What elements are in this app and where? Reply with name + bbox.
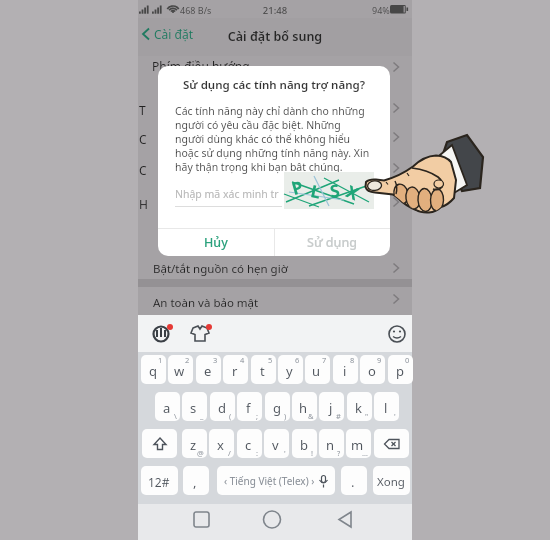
- button[interactable]: w: [168, 355, 193, 384]
- staticText: S: [328, 178, 342, 203]
- button[interactable]: s: [182, 392, 207, 421]
- button[interactable]: f: [237, 392, 262, 421]
- button[interactable]: k: [347, 392, 372, 421]
- button[interactable]: .: [341, 466, 367, 495]
- staticText: 0: [405, 355, 410, 365]
- staticText: \: [174, 411, 177, 421]
- staticText: ‹ Tiếng Việt (Telex) ›: [224, 474, 315, 488]
- button[interactable]: [148, 321, 174, 347]
- staticText: .: [351, 473, 355, 491]
- staticText: ": [365, 411, 369, 421]
- button[interactable]: [142, 429, 177, 458]
- button[interactable]: P: [284, 172, 374, 209]
- staticText: Các tính năng này chỉ dành cho những: [175, 104, 365, 118]
- button[interactable]: Cài đặt: [141, 26, 194, 42]
- staticText: z: [190, 436, 197, 454]
- button[interactable]: g: [265, 392, 290, 421]
- staticText: a: [163, 399, 171, 417]
- button[interactable]: Hủy: [158, 229, 274, 256]
- button[interactable]: Sử dụng: [275, 229, 390, 256]
- staticText: p: [396, 362, 404, 380]
- staticText: T: [139, 102, 146, 118]
- button[interactable]: e: [196, 355, 221, 384]
- button[interactable]: m: [346, 429, 371, 458]
- button[interactable]: Bật/tắt nguồn có hẹn giờ: [138, 256, 412, 280]
- staticText: n: [326, 436, 335, 454]
- staticText: …: [362, 448, 368, 458]
- staticText: w: [174, 362, 185, 380]
- staticText: người dùng khác có thể không hiểu: [175, 132, 351, 146]
- staticText: y: [286, 362, 293, 380]
- button[interactable]: p: [388, 355, 413, 384]
- button[interactable]: i: [333, 355, 358, 384]
- staticText: người có yêu cầu đặc biệt. Những: [175, 118, 341, 132]
- button[interactable]: v: [264, 429, 289, 458]
- button[interactable]: [374, 429, 409, 458]
- staticText: ': [284, 448, 286, 458]
- button[interactable]: j: [319, 392, 344, 421]
- staticText: r: [232, 362, 238, 380]
- staticText: Xong: [377, 474, 405, 490]
- staticText: Bật/tắt nguồn có hẹn giờ: [153, 261, 288, 277]
- button[interactable]: l: [374, 392, 399, 421]
- button[interactable]: ‹ Tiếng Việt (Telex) ›: [217, 466, 335, 495]
- staticText: 6: [295, 355, 300, 365]
- staticText: l: [384, 399, 388, 417]
- staticText: b: [300, 436, 308, 454]
- staticText: 4: [240, 355, 245, 365]
- button[interactable]: c: [237, 429, 262, 458]
- staticText: (: [229, 411, 232, 421]
- button[interactable]: ,: [183, 466, 209, 495]
- staticText: hoặc sử dụng những tính năng này. Xin: [175, 146, 370, 160]
- button[interactable]: [188, 321, 214, 347]
- button[interactable]: o: [360, 355, 385, 384]
- staticText: u: [312, 362, 321, 380]
- staticText: Cài đặt: [154, 26, 194, 42]
- button[interactable]: 12#: [141, 466, 178, 495]
- staticText: &: [308, 411, 314, 421]
- staticText: ): [284, 411, 287, 421]
- staticText: 1: [158, 355, 163, 365]
- staticText: Phím điều hướng: [152, 58, 250, 74]
- button[interactable]: b: [292, 429, 317, 458]
- staticText: 5: [268, 355, 273, 365]
- button[interactable]: q: [141, 355, 166, 384]
- staticText: ': [394, 411, 396, 421]
- staticText: v: [272, 436, 279, 454]
- staticText: j: [329, 399, 333, 417]
- staticText: 468 B/s: [180, 4, 212, 16]
- staticText: #: [336, 411, 341, 421]
- staticText: f: [246, 399, 251, 417]
- button[interactable]: t: [251, 355, 276, 384]
- staticText: Sử dụng các tính năng trợ năng?: [158, 77, 390, 93]
- staticText: x: [217, 436, 224, 454]
- button[interactable]: [386, 321, 412, 347]
- button[interactable]: h: [292, 392, 317, 421]
- button[interactable]: r: [223, 355, 248, 384]
- button[interactable]: An toàn và bảo mật: [138, 287, 412, 315]
- staticText: e: [204, 362, 212, 380]
- staticText: ?: [337, 448, 341, 458]
- staticText: 12#: [148, 474, 170, 490]
- staticText: !: [311, 448, 314, 458]
- button[interactable]: z: [182, 429, 207, 458]
- button[interactable]: a: [155, 392, 180, 421]
- staticText: C: [139, 162, 147, 178]
- button[interactable]: [186, 506, 218, 538]
- staticText: H: [139, 196, 148, 212]
- staticText: 8: [350, 355, 355, 365]
- button[interactable]: [256, 506, 288, 538]
- staticText: k: [355, 399, 362, 417]
- staticText: An toàn và bảo mật: [153, 295, 259, 311]
- button[interactable]: u: [305, 355, 330, 384]
- staticText: o: [368, 362, 376, 380]
- staticText: Nhập mã xác minh tr: [175, 187, 279, 201]
- button[interactable]: d: [210, 392, 235, 421]
- button[interactable]: [330, 506, 362, 538]
- button[interactable]: Xong: [373, 466, 410, 495]
- staticText: Cài đặt bổ sung: [138, 28, 412, 45]
- button[interactable]: x: [209, 429, 234, 458]
- staticText: Hủy: [204, 234, 228, 251]
- button[interactable]: y: [278, 355, 303, 384]
- button[interactable]: n: [319, 429, 344, 458]
